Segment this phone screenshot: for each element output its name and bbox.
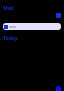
- button[interactable]: [3, 23, 61, 30]
- button[interactable]: Add: [56, 86, 61, 91]
- button[interactable]: Today: [3, 35, 18, 42]
- button[interactable]: Mail: [3, 5, 14, 12]
- button[interactable]: Profile: [56, 13, 61, 18]
